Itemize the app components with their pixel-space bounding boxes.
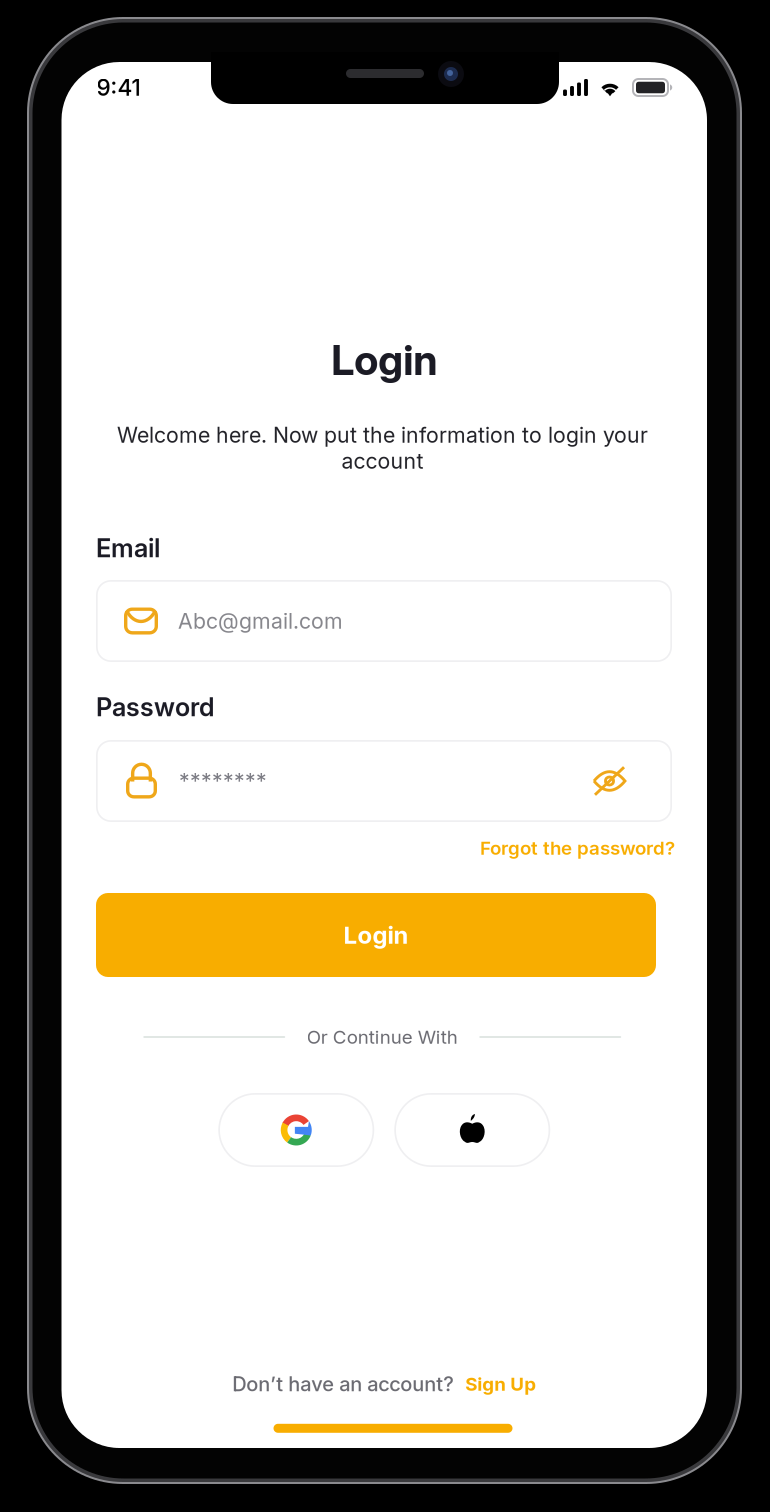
staticText: Don’t have an account? [232, 1372, 454, 1396]
staticText: ******** [179, 768, 267, 794]
staticText: Password [96, 692, 215, 722]
staticText: Sign Up [465, 1373, 536, 1395]
staticText: Welcome here. Now put the information to… [117, 422, 648, 474]
staticText: Login [343, 920, 408, 949]
staticText: Email [96, 533, 160, 563]
button[interactable]: Forgot the password? [475, 833, 675, 863]
staticText: Login [331, 335, 437, 385]
staticText: Or Continue With [307, 1026, 458, 1048]
staticText: 9:41 [96, 74, 140, 101]
button[interactable]: Continue with Google [218, 1093, 374, 1167]
button[interactable]: Continue with Apple [394, 1093, 550, 1167]
staticText: Forgot the password? [480, 837, 675, 859]
staticText: Abc@gmail.com [178, 608, 343, 634]
button[interactable]: Sign Up [465, 1373, 536, 1395]
button[interactable]: Login [96, 893, 656, 977]
